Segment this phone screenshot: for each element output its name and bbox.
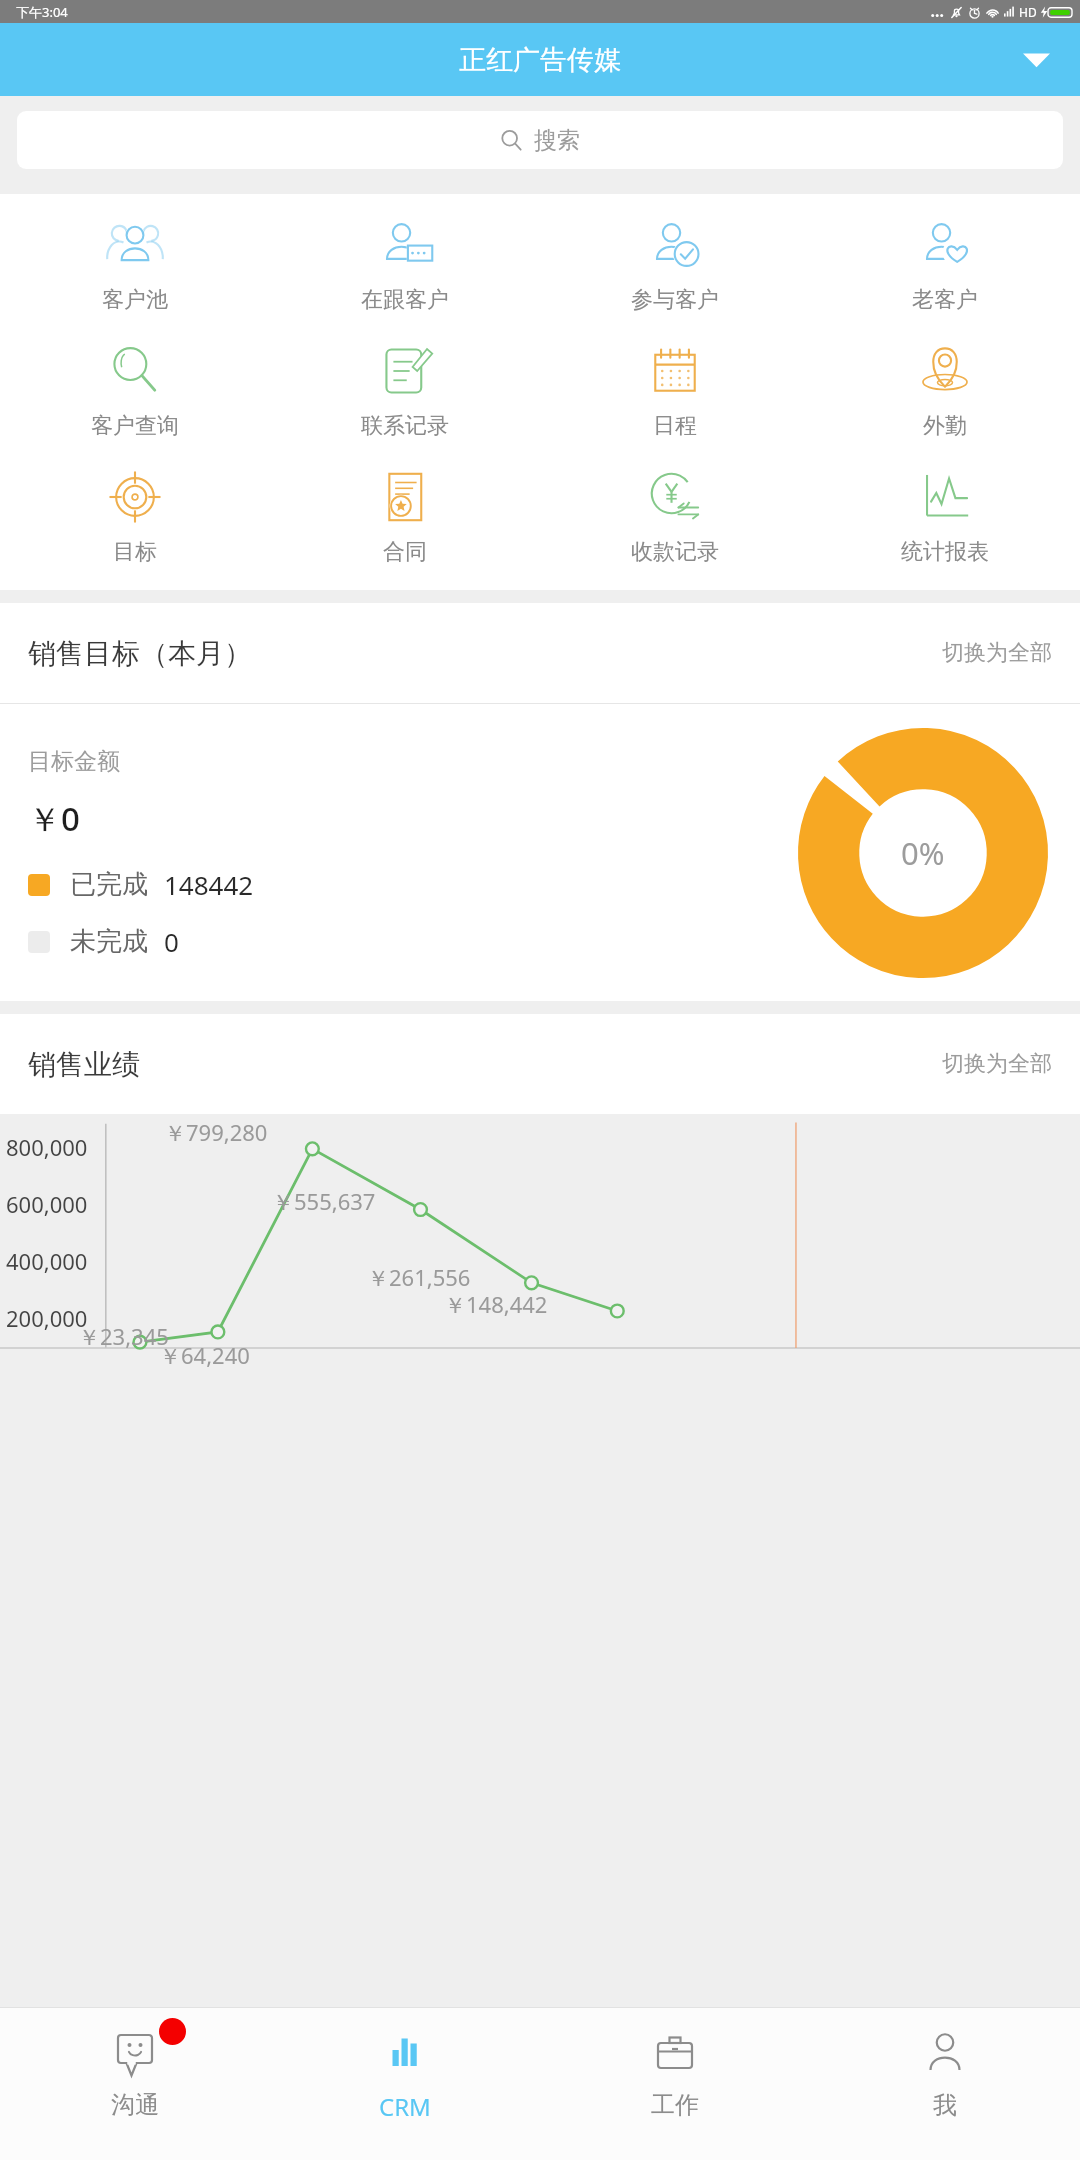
button[interactable]: 参与客户: [540, 202, 810, 328]
staticText: 600,000: [6, 1189, 88, 1219]
staticText: 销售目标（本月）: [28, 636, 252, 671]
button[interactable]: 销售业绩: [0, 1014, 1080, 1114]
staticText: 800,000: [6, 1132, 88, 1162]
button[interactable]: 销售目标（本月）: [0, 603, 1080, 703]
staticText: ￥64,240: [159, 1340, 250, 1370]
staticText: 切换为全部: [942, 639, 1052, 667]
staticText: 销售业绩: [28, 1047, 140, 1082]
staticText: 收款记录: [631, 538, 719, 566]
staticText: 日程: [653, 412, 697, 440]
staticText: ￥261,556: [367, 1262, 471, 1292]
staticText: 未完成: [70, 925, 148, 958]
button[interactable]: 在跟客户: [270, 202, 540, 328]
staticText: 客户查询: [91, 412, 179, 440]
staticText: 沟通: [111, 2090, 159, 2120]
button[interactable]: 工作: [540, 2008, 810, 2160]
button[interactable]: 合同: [270, 454, 540, 580]
staticText: 正红广告传媒: [459, 43, 621, 77]
staticText: 老客户: [912, 286, 978, 314]
staticText: ￥799,280: [164, 1117, 268, 1147]
staticText: 切换为全部: [942, 1050, 1052, 1078]
staticText: ￥148,442: [444, 1289, 548, 1319]
staticText: 我: [933, 2090, 957, 2120]
staticText: 搜索: [534, 126, 580, 155]
staticText: 工作: [651, 2090, 699, 2120]
staticText: 客户池: [102, 286, 168, 314]
staticText: CRM: [379, 2090, 431, 2123]
staticText: 0: [164, 924, 179, 959]
staticText: ￥23,345: [78, 1321, 169, 1351]
staticText: 400,000: [6, 1246, 88, 1276]
button[interactable]: 联系记录: [270, 328, 540, 454]
button[interactable]: 目标: [0, 454, 270, 580]
staticText: 下午3:04: [16, 3, 68, 21]
staticText: 在跟客户: [361, 286, 449, 314]
staticText: 合同: [383, 538, 427, 566]
button[interactable]: 老客户: [810, 202, 1080, 328]
button[interactable]: Search: [17, 111, 1063, 169]
button[interactable]: 客户池: [0, 202, 270, 328]
staticText: 200,000: [6, 1303, 88, 1333]
button[interactable]: 统计报表: [810, 454, 1080, 580]
button[interactable]: 客户查询: [0, 328, 270, 454]
button[interactable]: Switch organization: [1012, 36, 1060, 84]
staticText: 统计报表: [901, 538, 989, 566]
staticText: 0%: [901, 832, 945, 874]
button[interactable]: 沟通: [0, 2008, 270, 2160]
button[interactable]: 收款记录: [540, 454, 810, 580]
button[interactable]: CRM: [270, 2008, 540, 2160]
staticText: 联系记录: [361, 412, 449, 440]
button[interactable]: 外勤: [810, 328, 1080, 454]
staticText: 已完成: [70, 868, 148, 901]
button[interactable]: 我: [810, 2008, 1080, 2160]
staticText: ￥0: [28, 796, 80, 841]
staticText: HD: [1019, 4, 1037, 20]
button[interactable]: 日程: [540, 328, 810, 454]
staticText: 参与客户: [631, 286, 719, 314]
staticText: 目标: [113, 538, 157, 566]
staticText: 外勤: [923, 412, 967, 440]
staticText: ￥555,637: [272, 1186, 376, 1216]
staticText: 目标金额: [28, 747, 120, 776]
staticText: 148442: [164, 867, 254, 902]
